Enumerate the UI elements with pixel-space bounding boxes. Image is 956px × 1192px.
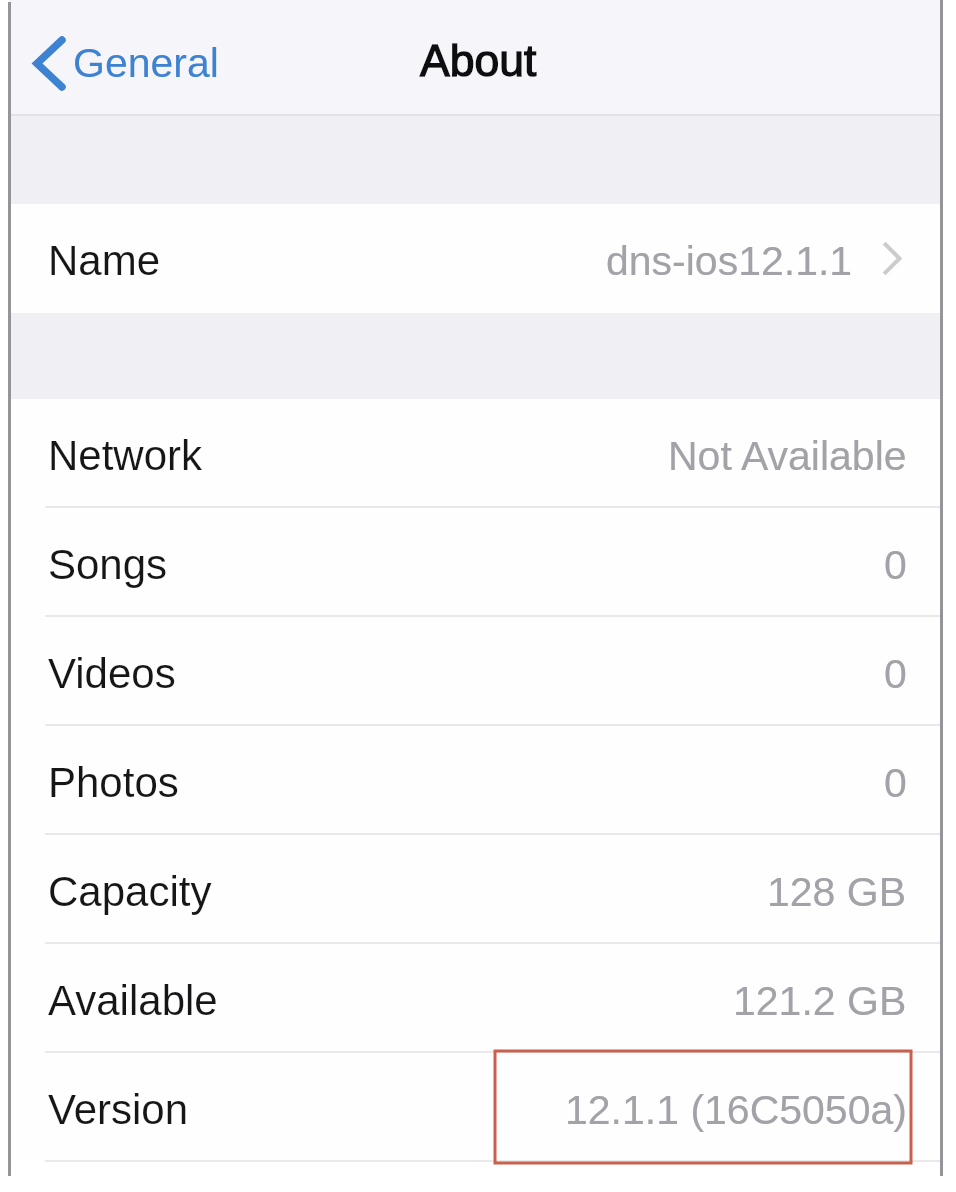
staticText: 0 bbox=[884, 760, 907, 806]
staticText: About bbox=[420, 36, 537, 86]
staticText: Name bbox=[48, 237, 161, 284]
staticText: 128 GB bbox=[767, 869, 907, 915]
button[interactable]: Capacity, 128 GB bbox=[10, 835, 940, 944]
button[interactable]: Network, Not Available bbox=[10, 399, 940, 508]
staticText: Photos bbox=[48, 759, 179, 806]
staticText: 0 bbox=[884, 651, 907, 697]
staticText: Network bbox=[48, 432, 203, 479]
staticText: General bbox=[73, 40, 219, 86]
button[interactable]: Version, 12.1.1 (16C5050a) bbox=[10, 1053, 940, 1162]
staticText: Videos bbox=[48, 650, 176, 697]
button[interactable]: Songs, 0 bbox=[10, 508, 940, 617]
button[interactable]: Available, 121.2 GB bbox=[10, 944, 940, 1053]
staticText: Available bbox=[48, 977, 218, 1024]
staticText: 121.2 GB bbox=[733, 978, 907, 1024]
staticText: Songs bbox=[48, 541, 168, 588]
staticText: 0 bbox=[884, 542, 907, 588]
staticText: 12.1.1 (16C5050a) bbox=[565, 1087, 907, 1133]
staticText: Capacity bbox=[48, 868, 212, 915]
button[interactable]: Back to General bbox=[10, 11, 233, 115]
button[interactable]: Videos, 0 bbox=[10, 617, 940, 726]
button[interactable]: Photos, 0 bbox=[10, 726, 940, 835]
staticText: Version bbox=[48, 1086, 189, 1133]
staticText: Not Available bbox=[668, 433, 907, 479]
button[interactable]: Name, dns-ios12.1.1 bbox=[10, 204, 940, 313]
staticText: dns-ios12.1.1 bbox=[606, 238, 853, 284]
